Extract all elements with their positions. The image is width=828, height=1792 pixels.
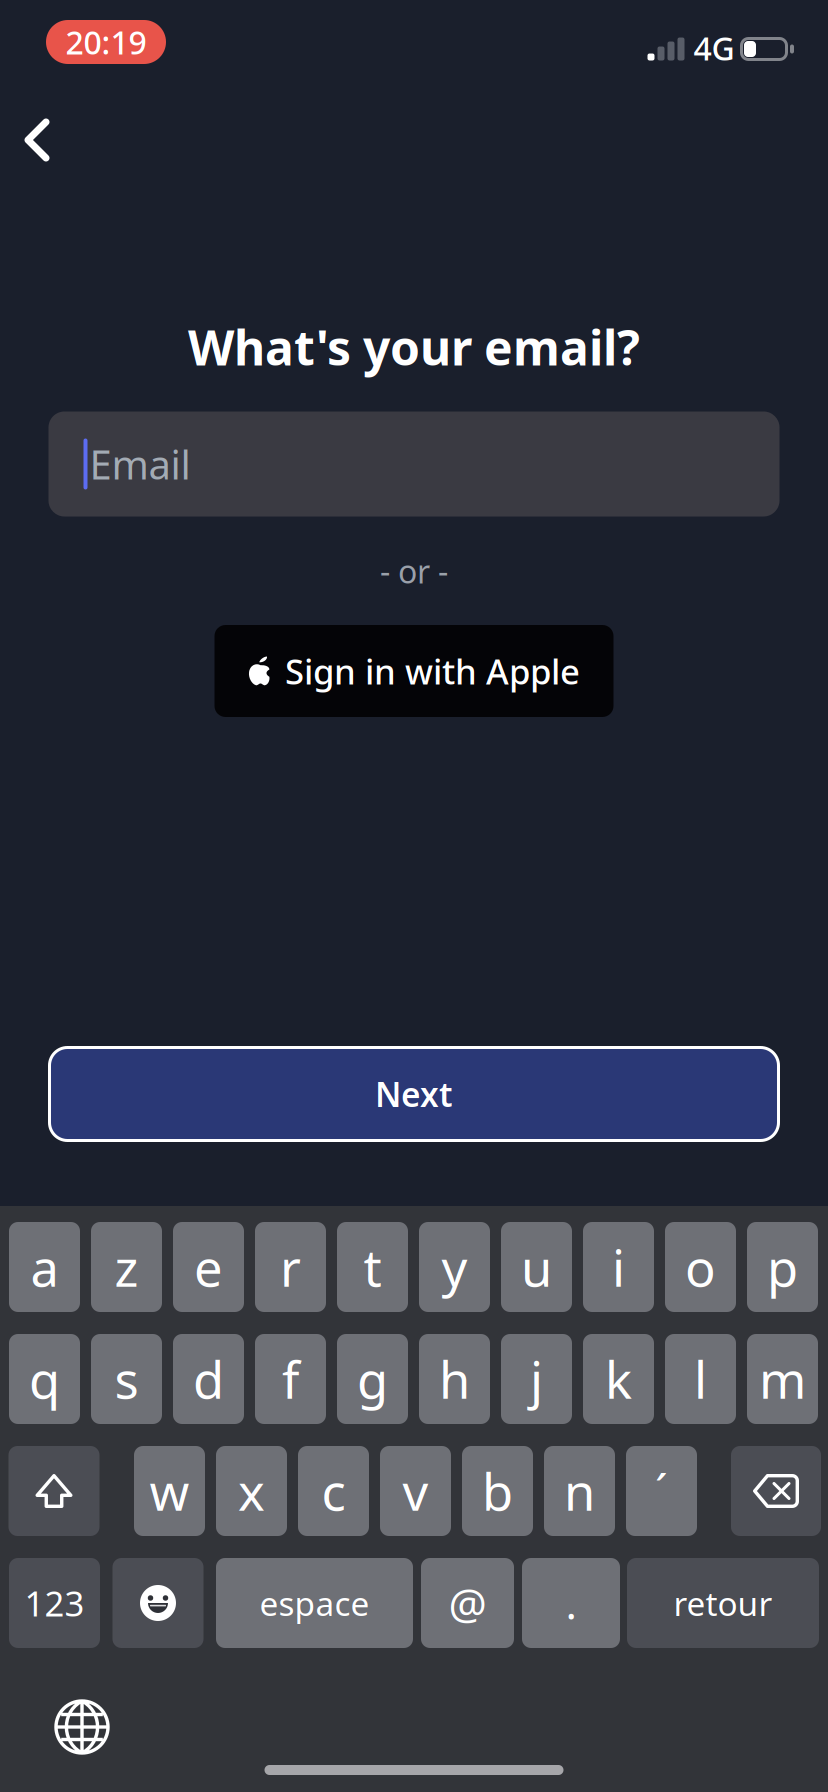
staticText: . [565,1575,576,1631]
staticText: Email [89,437,190,490]
button[interactable]: @ [421,1558,514,1648]
staticText: Next [375,1072,453,1116]
button[interactable]: Next [49,1047,778,1140]
button[interactable]: y [419,1222,490,1312]
staticText: j [530,1345,543,1413]
staticText: Sign in with Apple [285,648,580,694]
staticText: t [363,1233,381,1301]
button[interactable]: c [298,1446,369,1536]
button[interactable]: t [337,1222,408,1312]
staticText: g [357,1345,388,1413]
button[interactable]: 123 [9,1558,100,1648]
staticText: espace [259,1581,369,1625]
button[interactable]: w [134,1446,205,1536]
staticText: c [321,1457,345,1525]
button[interactable]: p [747,1222,818,1312]
button[interactable]: Shift [8,1446,99,1536]
staticText: ´ [655,1461,668,1521]
staticText: e [194,1233,223,1301]
button[interactable]: z [91,1222,162,1312]
staticText: - or - [380,550,448,592]
staticText: s [114,1345,138,1413]
button[interactable]: d [173,1334,244,1424]
staticText: 4G [693,27,734,69]
button[interactable]: n [544,1446,615,1536]
button[interactable]: k [583,1334,654,1424]
button[interactable]: Switch keyboard [37,1682,127,1772]
button[interactable]: x [216,1446,287,1536]
button[interactable]: i [583,1222,654,1312]
staticText: y [441,1233,467,1301]
staticText: d [193,1345,224,1413]
staticText: p [767,1233,798,1301]
staticText: retour [673,1581,772,1625]
button[interactable]: Delete [731,1446,821,1536]
button[interactable]: a [9,1222,80,1312]
staticText: m [759,1345,806,1413]
button[interactable]: f [255,1334,326,1424]
staticText: 123 [24,1580,84,1626]
staticText: h [439,1345,470,1413]
staticText: v [402,1457,428,1525]
button[interactable]: b [462,1446,533,1536]
button[interactable]: . [522,1558,620,1648]
button[interactable]: m [747,1334,818,1424]
staticText: l [694,1345,707,1413]
button[interactable]: v [380,1446,451,1536]
button[interactable]: u [501,1222,572,1312]
staticText: 20:19 [65,21,146,63]
button[interactable]: h [419,1334,490,1424]
staticText: a [30,1233,58,1301]
button[interactable]: Sign in with Apple [214,625,613,717]
staticText: z [114,1233,138,1301]
staticText: r [280,1233,301,1301]
staticText: f [282,1345,299,1413]
button[interactable]: r [255,1222,326,1312]
button[interactable]: espace [216,1558,413,1648]
staticText: i [612,1233,625,1301]
staticText: q [29,1345,60,1413]
button[interactable]: ´ [626,1446,697,1536]
button[interactable]: q [9,1334,80,1424]
staticText: @ [448,1575,486,1631]
button[interactable]: retour [627,1558,819,1648]
button[interactable]: e [173,1222,244,1312]
staticText: x [238,1457,265,1525]
staticText: n [564,1457,595,1525]
staticText: b [482,1457,513,1525]
button[interactable]: j [501,1334,572,1424]
button[interactable]: g [337,1334,408,1424]
staticText: What's your email? [188,315,640,379]
staticText: u [521,1233,552,1301]
button[interactable]: Back [0,94,83,186]
staticText: k [605,1345,632,1413]
staticText: w [149,1457,189,1525]
staticText: o [685,1233,716,1301]
button[interactable]: s [91,1334,162,1424]
button[interactable]: Emoji [112,1558,203,1648]
button[interactable]: l [665,1334,736,1424]
button[interactable]: o [665,1222,736,1312]
